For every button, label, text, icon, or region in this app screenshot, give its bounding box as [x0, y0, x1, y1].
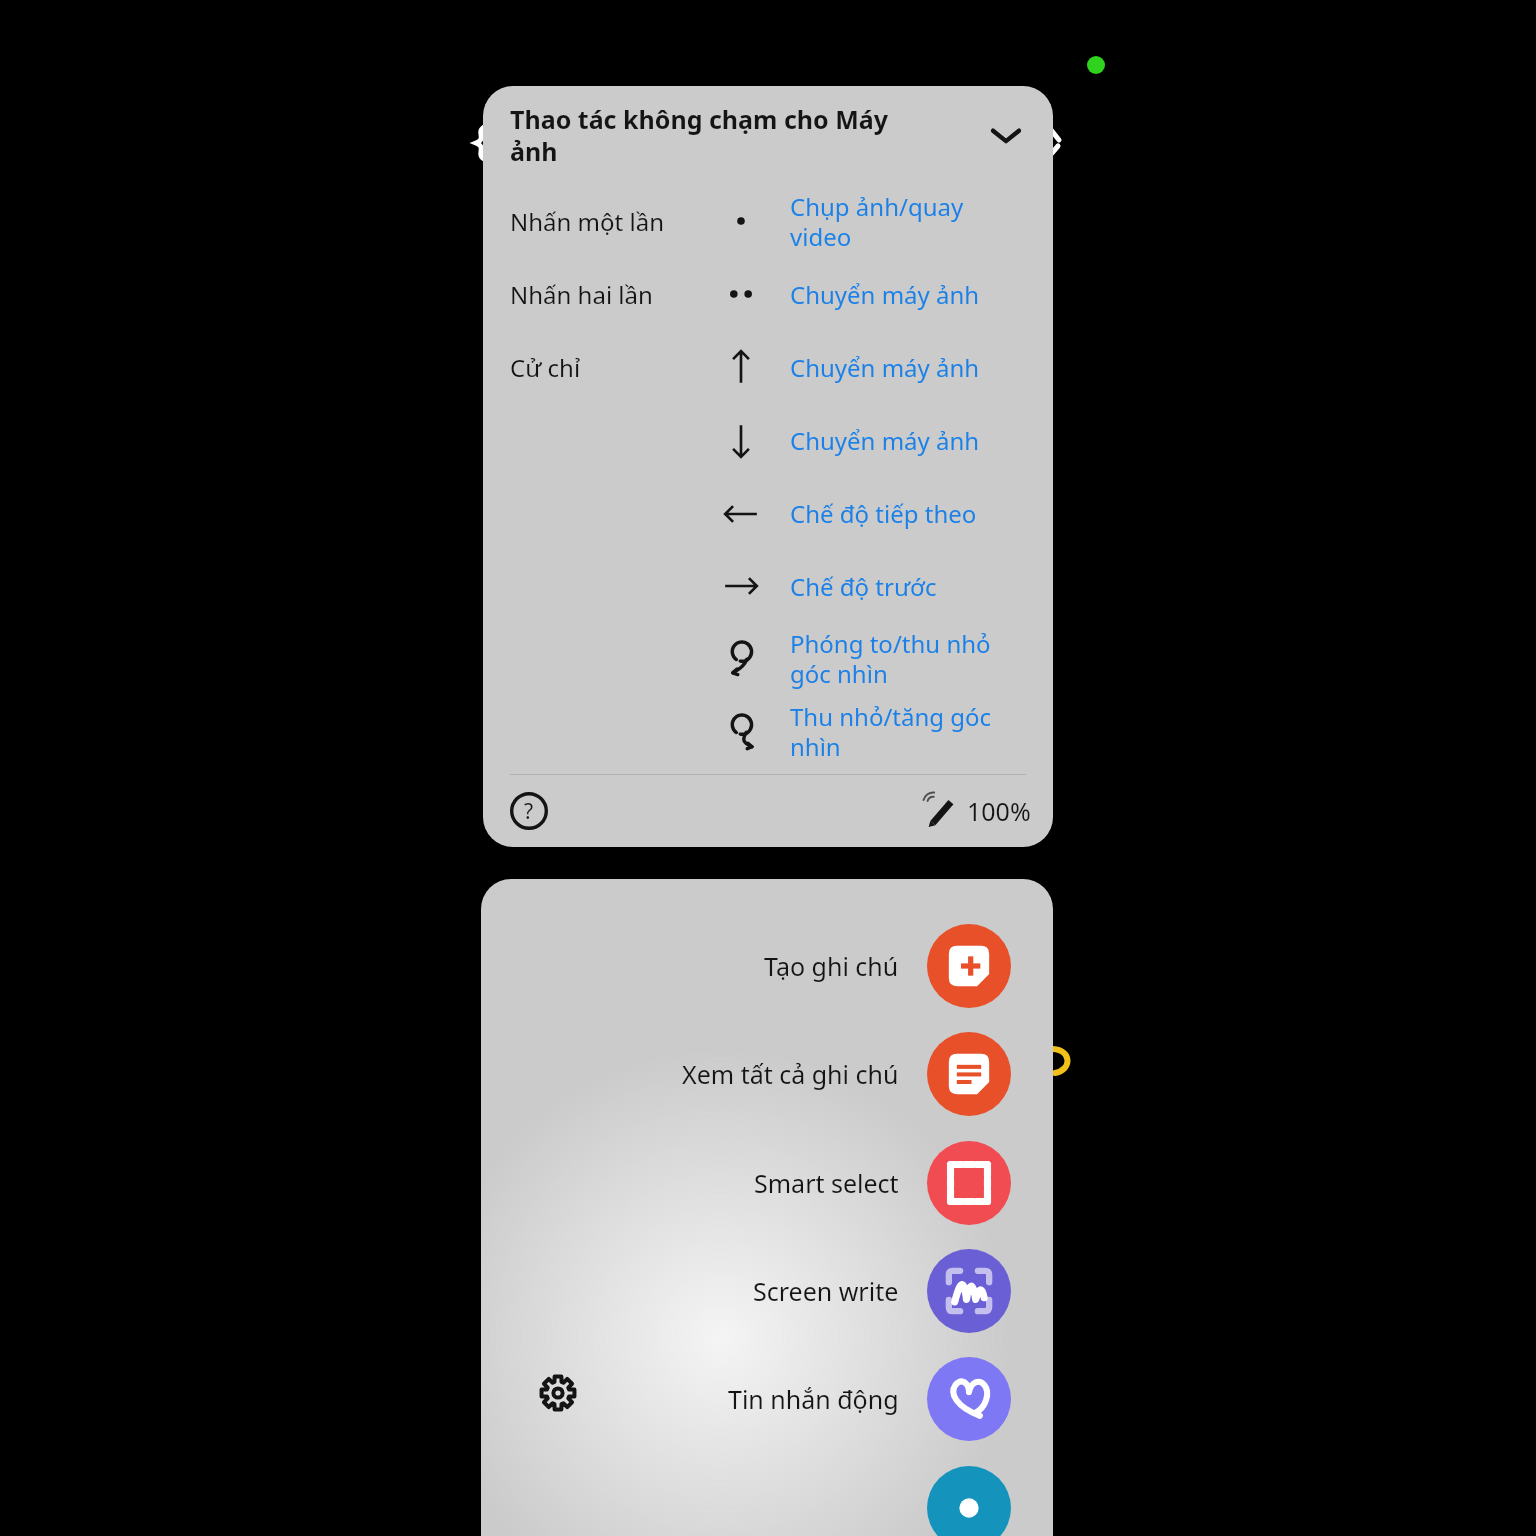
staticText: Thu nhỏ/tăng góc nhìn: [790, 700, 992, 763]
staticText: ?: [524, 797, 534, 826]
staticText: Chuyển máy ảnh: [790, 278, 980, 311]
staticText: Nhấn một lần: [510, 205, 710, 238]
staticText: Chế độ tiếp theo: [790, 497, 977, 530]
button[interactable]: Screen write: [481, 1244, 1053, 1338]
staticText: Screen write: [753, 1274, 899, 1308]
staticText: 100%: [967, 794, 1031, 828]
button[interactable]: Xem tất cả ghi chú: [481, 1027, 1053, 1121]
button[interactable]: Thao tác không chạm cho Máy ảnh: [483, 86, 1053, 184]
staticText: Tạo ghi chú: [764, 949, 899, 983]
button[interactable]: Help: [503, 785, 555, 837]
staticText: Cử chỉ: [510, 351, 710, 384]
staticText: Chuyển máy ảnh: [790, 424, 980, 457]
staticText: Chụp ảnh/quay video: [790, 190, 964, 253]
button[interactable]: Phóng to/thu nhỏ góc nhìn: [483, 622, 1053, 695]
staticText: Chế độ trước: [790, 570, 937, 603]
staticText: Thao tác không chạm cho Máy ảnh: [510, 102, 977, 168]
button[interactable]: Smart select: [481, 1136, 1053, 1230]
button[interactable]: Chế độ trước: [483, 550, 1053, 622]
button[interactable]: Tạo ghi chú: [481, 919, 1053, 1013]
staticText: Xem tất cả ghi chú: [682, 1057, 899, 1091]
button[interactable]: Nhấn một lần: [483, 184, 1053, 258]
button[interactable]: Collapse: [977, 106, 1035, 164]
button[interactable]: Settings: [529, 1364, 587, 1422]
button[interactable]: Tin nhắn động: [481, 1352, 1053, 1446]
staticText: Nhấn hai lần: [510, 278, 710, 311]
staticText: Phóng to/thu nhỏ góc nhìn: [790, 627, 991, 690]
button[interactable]: Thu nhỏ/tăng góc nhìn: [483, 695, 1053, 768]
button[interactable]: Cử chỉ: [483, 330, 1053, 404]
button[interactable]: [481, 1461, 1053, 1536]
staticText: Chuyển máy ảnh: [790, 351, 980, 384]
button[interactable]: Nhấn hai lần: [483, 258, 1053, 330]
staticText: Smart select: [754, 1166, 899, 1200]
button[interactable]: Chuyển máy ảnh: [483, 404, 1053, 477]
staticText: Tin nhắn động: [728, 1382, 899, 1416]
button[interactable]: Chế độ tiếp theo: [483, 477, 1053, 550]
button[interactable]: S Pen battery 100%: [919, 790, 1031, 832]
